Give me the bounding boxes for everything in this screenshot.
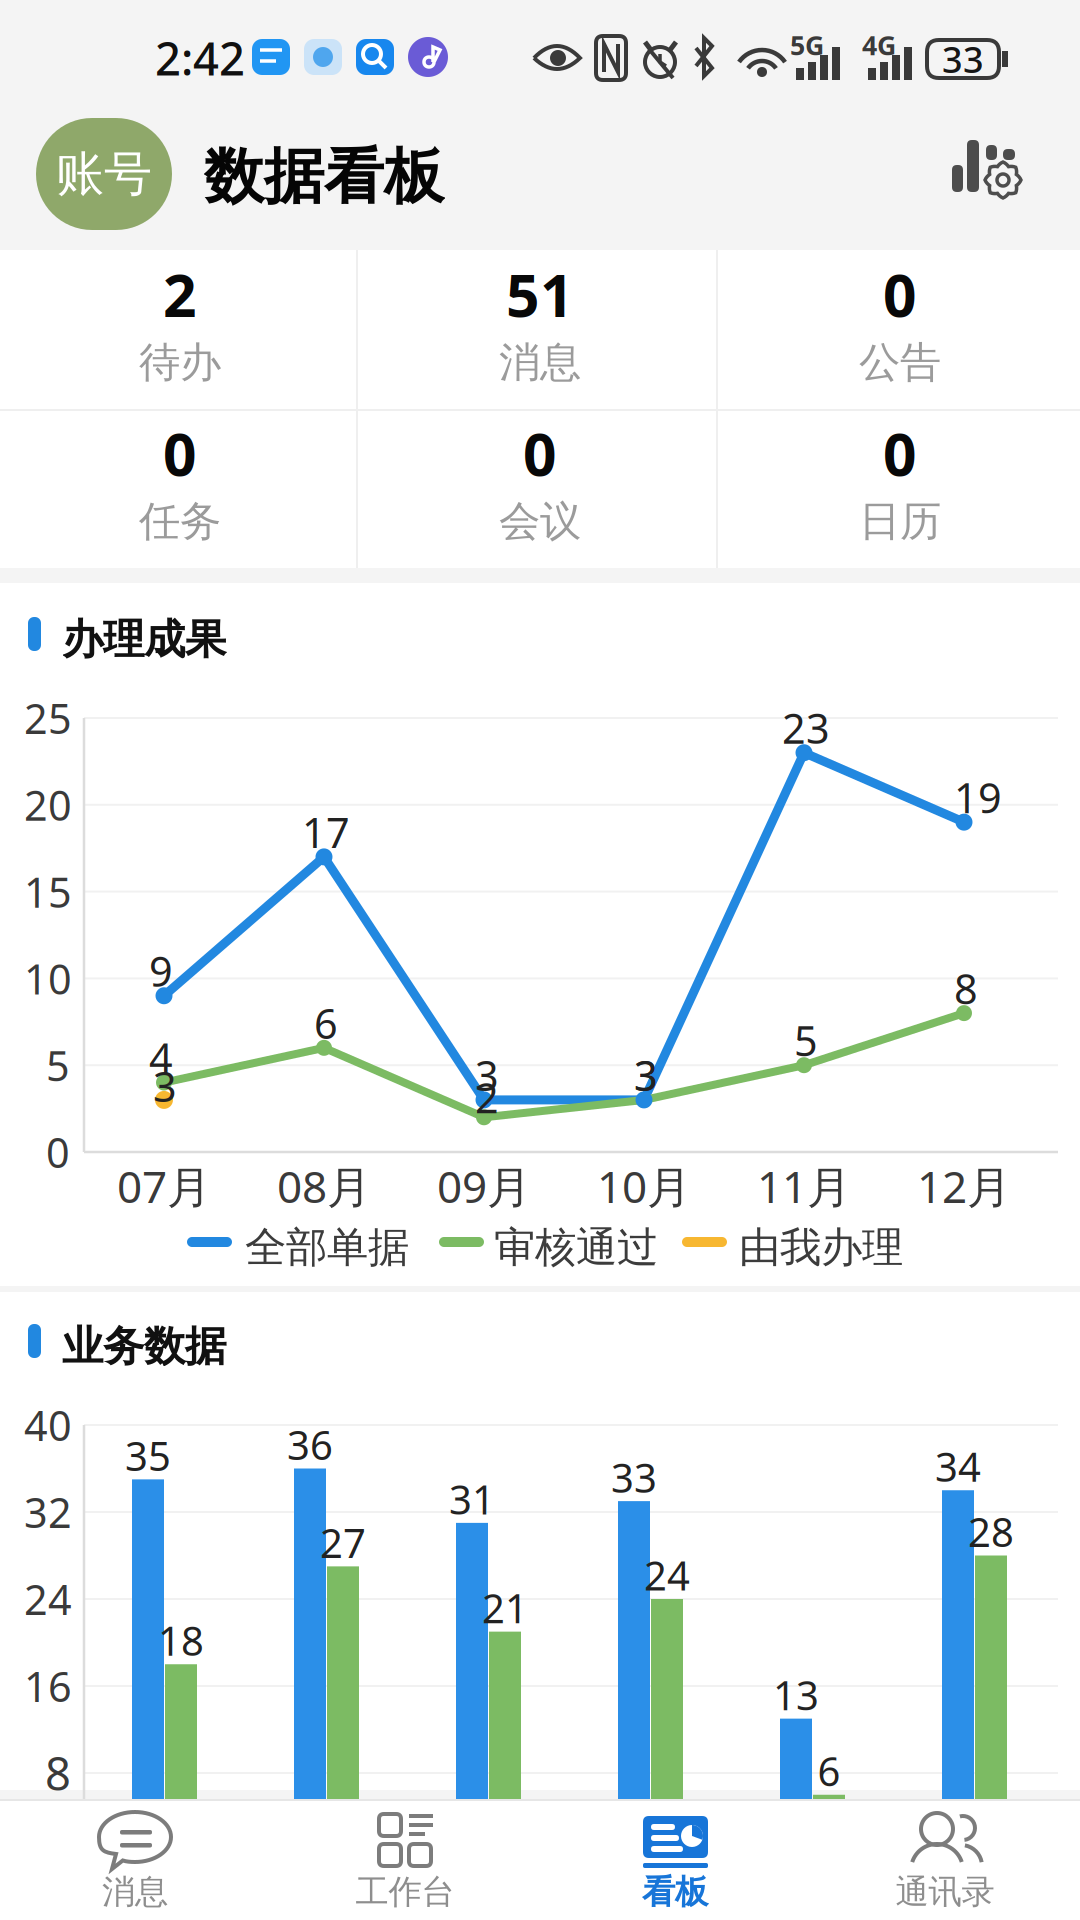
staticText: 10月 (597, 1157, 691, 1215)
staticText: 8 (954, 961, 978, 1016)
button[interactable]: 0 (720, 409, 1080, 568)
staticText: 3 (634, 1047, 658, 1102)
staticText: 消息 (499, 337, 581, 388)
staticText: 36 (287, 1418, 333, 1471)
staticText: 0 (46, 1125, 70, 1179)
staticText: 19 (954, 770, 1002, 825)
staticText: 33 (611, 1451, 657, 1504)
staticText: 6 (314, 995, 338, 1050)
staticText: 日历 (859, 496, 941, 547)
staticText: 工作台 (355, 1871, 454, 1912)
staticText: 34 (935, 1440, 981, 1493)
button[interactable]: 0 (360, 409, 720, 568)
staticText: 18 (158, 1614, 204, 1667)
staticText: 全部单据 (245, 1222, 409, 1273)
staticText: 40 (24, 1398, 72, 1452)
staticText: 20 (24, 777, 72, 832)
staticText: 账号 (56, 144, 152, 203)
staticText: 31 (449, 1472, 495, 1525)
button[interactable]: 通讯录 (810, 1799, 1080, 1920)
button[interactable]: 工作台 (270, 1799, 540, 1920)
staticText: 3 (475, 1047, 499, 1102)
staticText: 32 (24, 1485, 72, 1539)
staticText: 2:42 (155, 28, 245, 88)
staticText: 5G (790, 27, 824, 63)
staticText: 0 (883, 414, 917, 492)
button[interactable]: 图表设置 (946, 138, 1026, 200)
button[interactable]: 0 (0, 409, 360, 568)
staticText: 16 (24, 1659, 72, 1713)
staticText: 2 (475, 1070, 499, 1125)
staticText: 21 (482, 1581, 528, 1634)
button[interactable]: 0 (720, 250, 1080, 409)
staticText: 0 (523, 414, 557, 492)
staticText: 35 (125, 1429, 171, 1482)
staticText: 通讯录 (895, 1871, 994, 1912)
staticText: 09月 (437, 1157, 531, 1215)
staticText: 4G (862, 27, 896, 63)
staticText: 08月 (277, 1157, 371, 1215)
staticText: 5 (794, 1013, 818, 1068)
staticText: 由我办理 (739, 1222, 903, 1273)
staticText: 3 (634, 1047, 658, 1102)
staticText: 10 (24, 951, 72, 1006)
staticText: 审核通过 (494, 1222, 658, 1273)
staticText: 消息 (102, 1871, 168, 1912)
staticText: 51 (506, 255, 574, 333)
staticText: 5 (46, 1038, 70, 1093)
staticText: 4 (149, 1030, 173, 1085)
button[interactable]: 2 (0, 250, 360, 409)
staticText: 待办 (139, 337, 221, 388)
button[interactable]: 账号 (36, 118, 172, 230)
button[interactable]: 51 (360, 250, 720, 409)
staticText: 27 (320, 1516, 366, 1569)
button[interactable]: 消息 (0, 1799, 270, 1920)
staticText: 24 (24, 1572, 72, 1626)
staticText: 3 (153, 1058, 177, 1113)
staticText: 13 (773, 1668, 819, 1721)
staticText: 会议 (499, 496, 581, 547)
staticText: 07月 (117, 1157, 211, 1215)
button[interactable]: 看板 (540, 1799, 810, 1920)
staticText: 8 (45, 1743, 71, 1803)
staticText: 17 (302, 804, 350, 859)
staticText: 数据看板 (204, 140, 444, 214)
staticText: 公告 (859, 337, 941, 388)
staticText: 11月 (757, 1157, 851, 1215)
staticText: 28 (968, 1505, 1014, 1558)
staticText: 看板 (642, 1871, 708, 1912)
staticText: 任务 (139, 496, 221, 547)
staticText: 23 (782, 700, 830, 755)
staticText: 0 (163, 414, 197, 492)
staticText: 25 (24, 691, 72, 745)
staticText: 33 (942, 35, 984, 83)
staticText: 9 (149, 943, 173, 998)
staticText: 2 (163, 255, 197, 333)
staticText: 12月 (917, 1157, 1011, 1215)
staticText: 办理成果 (62, 614, 226, 665)
staticText: 24 (644, 1548, 690, 1601)
staticText: 6 (817, 1744, 840, 1797)
staticText: 业务数据 (62, 1321, 226, 1372)
staticText: 0 (883, 255, 917, 333)
staticText: 15 (24, 864, 72, 919)
